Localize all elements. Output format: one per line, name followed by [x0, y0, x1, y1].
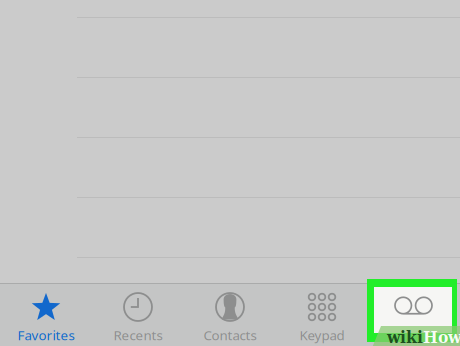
button[interactable]: Recents [92, 284, 184, 346]
button[interactable] [368, 284, 460, 346]
button[interactable]: Keypad [276, 284, 368, 346]
button[interactable]: Contacts [184, 284, 276, 346]
staticText: Keypad [299, 326, 344, 344]
staticText: Recents [113, 326, 162, 344]
staticText: Favorites [17, 326, 74, 344]
staticText: wiki [387, 327, 423, 346]
staticText: How [423, 327, 460, 346]
button[interactable]: Favorites [0, 284, 92, 346]
staticText [412, 326, 415, 344]
staticText: Contacts [203, 326, 256, 344]
